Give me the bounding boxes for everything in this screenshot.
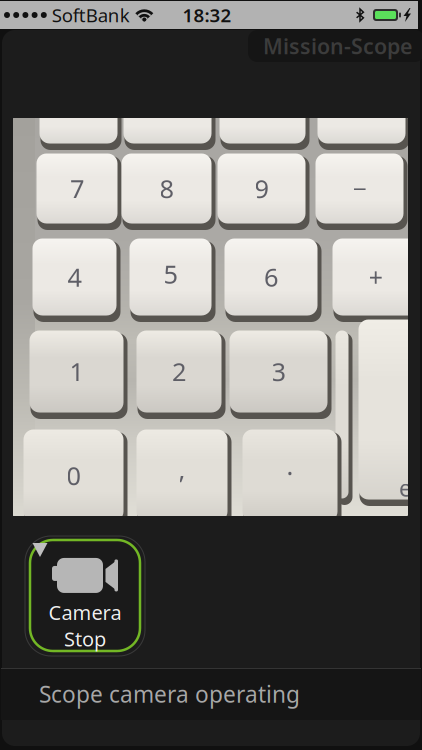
staticText: 4 bbox=[67, 260, 81, 294]
staticText: 3 bbox=[271, 355, 285, 388]
staticText: 18:32 bbox=[182, 3, 231, 27]
staticText: 7 bbox=[70, 172, 84, 205]
staticText: + bbox=[368, 260, 382, 294]
staticText: − bbox=[352, 172, 366, 205]
staticText: Camera bbox=[48, 599, 121, 625]
staticText: SoftBank bbox=[52, 3, 130, 27]
staticText: . bbox=[286, 449, 293, 482]
staticText: 9 bbox=[254, 172, 268, 205]
staticText: 2 bbox=[172, 355, 186, 388]
staticText: Scope camera operating bbox=[39, 679, 300, 709]
staticText: 1 bbox=[69, 355, 83, 388]
staticText: e bbox=[399, 473, 412, 503]
staticText: 5 bbox=[163, 257, 177, 291]
staticText: , bbox=[178, 453, 185, 486]
staticText: Mission-Scope bbox=[263, 32, 412, 60]
button[interactable]: Camera bbox=[25, 536, 145, 656]
staticText: 0 bbox=[66, 459, 80, 492]
staticText: Stop bbox=[64, 625, 106, 652]
button[interactable]: Mission-Scope bbox=[248, 30, 422, 62]
staticText: 8 bbox=[159, 172, 173, 205]
staticText: 6 bbox=[264, 260, 278, 294]
